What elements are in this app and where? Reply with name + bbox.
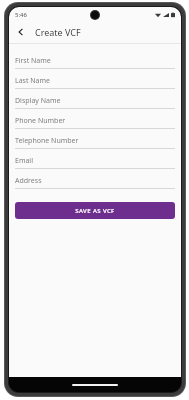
button[interactable]: SAVE AS VCF — [15, 202, 175, 219]
button[interactable]: First Name — [15, 53, 175, 73]
staticText: 5:46 — [15, 11, 27, 19]
staticText: Create VCF — [35, 26, 81, 38]
staticText: Telephone Number — [15, 136, 79, 146]
button[interactable]: Email — [15, 153, 175, 173]
button[interactable]: Back — [13, 24, 29, 40]
button[interactable]: Last Name — [15, 73, 175, 93]
button[interactable]: Display Name — [15, 93, 175, 113]
staticText: Address — [15, 176, 42, 186]
button[interactable]: Phone Number — [15, 113, 175, 133]
staticText: SAVE AS VCF — [75, 207, 115, 215]
staticText: Email — [15, 156, 33, 166]
button[interactable]: Address — [15, 173, 175, 193]
staticText: Display Name — [15, 96, 61, 106]
staticText: Last Name — [15, 76, 51, 86]
staticText: Phone Number — [15, 116, 66, 126]
staticText: First Name — [15, 56, 51, 66]
button[interactable]: Telephone Number — [15, 133, 175, 153]
